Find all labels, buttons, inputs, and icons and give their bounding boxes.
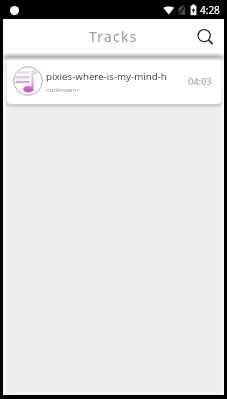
staticText: 04:03 xyxy=(188,75,212,88)
staticText: pixies-where-is-my-mind-h xyxy=(46,70,167,83)
staticText: 4:28 xyxy=(200,3,220,17)
staticText: <unknown> xyxy=(46,85,80,93)
button[interactable]: Search xyxy=(193,23,219,49)
staticText: Tracks xyxy=(89,27,138,46)
button[interactable]: pixies-where-is-my-mind-h xyxy=(7,58,221,104)
